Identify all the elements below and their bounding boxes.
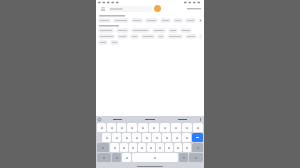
- button[interactable]: Filter chip: [152, 28, 166, 33]
- button[interactable]: [129, 143, 137, 152]
- button[interactable]: [132, 133, 141, 142]
- button[interactable]: Emoji: [122, 153, 131, 162]
- button[interactable]: [127, 123, 137, 132]
- button[interactable]: Filter chip: [131, 28, 150, 33]
- button[interactable]: [182, 123, 192, 132]
- button[interactable]: Account: [154, 5, 161, 12]
- button[interactable]: [133, 116, 166, 123]
- button[interactable]: Filter chip: [160, 18, 171, 23]
- button[interactable]: Filter chip: [168, 28, 178, 33]
- button[interactable]: [149, 123, 159, 132]
- button[interactable]: [172, 133, 181, 142]
- button[interactable]: [147, 143, 155, 152]
- button[interactable]: [192, 133, 203, 142]
- button[interactable]: [108, 6, 152, 12]
- button[interactable]: Filter chip: [185, 34, 197, 39]
- button[interactable]: Shift: [97, 143, 109, 152]
- button[interactable]: Period: [179, 153, 188, 162]
- button[interactable]: [120, 143, 128, 152]
- button[interactable]: [102, 133, 111, 142]
- button[interactable]: Emoji: [98, 118, 101, 121]
- button[interactable]: [162, 133, 171, 142]
- button[interactable]: Filter chip: [167, 34, 183, 39]
- button[interactable]: Filter chip: [116, 28, 129, 33]
- button[interactable]: [138, 123, 148, 132]
- button[interactable]: Filter chip: [98, 40, 108, 45]
- button[interactable]: Filter chip: [141, 34, 155, 39]
- button[interactable]: [156, 143, 164, 152]
- button[interactable]: [182, 133, 191, 142]
- button[interactable]: Menu: [99, 5, 106, 12]
- button[interactable]: [152, 133, 161, 142]
- button[interactable]: [165, 143, 173, 152]
- button[interactable]: [183, 143, 191, 152]
- button[interactable]: Filter chip: [173, 18, 183, 23]
- button[interactable]: [171, 123, 181, 132]
- button[interactable]: Filter chip: [145, 18, 158, 23]
- button[interactable]: Filter chip: [180, 28, 192, 33]
- button[interactable]: Filter chip: [110, 40, 119, 45]
- button[interactable]: [193, 123, 203, 132]
- button[interactable]: Symbols: [97, 153, 111, 162]
- button[interactable]: Language: [112, 153, 121, 162]
- button[interactable]: Filter chip: [117, 34, 128, 39]
- button[interactable]: Filter chip: [98, 18, 111, 23]
- button[interactable]: Filter chip: [185, 18, 196, 23]
- button[interactable]: [97, 123, 106, 132]
- button[interactable]: [138, 143, 146, 152]
- button[interactable]: Filter chip: [130, 34, 139, 39]
- button[interactable]: Space: [132, 153, 178, 162]
- button[interactable]: [174, 143, 182, 152]
- button[interactable]: Filter chip: [98, 28, 114, 33]
- button[interactable]: [117, 123, 126, 132]
- button[interactable]: Filter chip: [98, 34, 115, 39]
- button[interactable]: [112, 133, 121, 142]
- button[interactable]: [166, 116, 199, 123]
- button[interactable]: Filter chip: [131, 18, 143, 23]
- button[interactable]: More: [199, 118, 202, 121]
- button[interactable]: [110, 143, 119, 152]
- button[interactable]: Backspace: [192, 143, 203, 152]
- button[interactable]: Enter: [189, 153, 203, 162]
- button[interactable]: [107, 123, 116, 132]
- button[interactable]: [101, 116, 133, 123]
- button[interactable]: [160, 123, 170, 132]
- button[interactable]: Filter chip: [157, 34, 165, 39]
- button[interactable]: [142, 133, 151, 142]
- button[interactable]: Filter chip: [113, 18, 129, 23]
- button[interactable]: [122, 133, 131, 142]
